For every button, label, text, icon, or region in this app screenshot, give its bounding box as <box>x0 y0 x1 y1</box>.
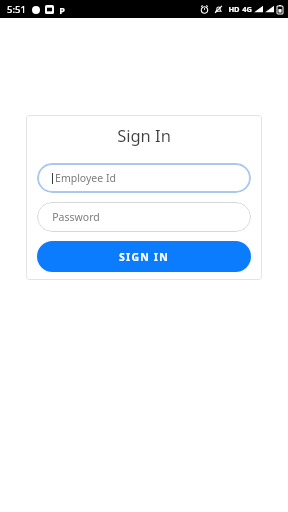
button[interactable]: Employee Id <box>37 163 251 193</box>
staticText: Password <box>52 210 100 224</box>
staticText: 5:51 <box>7 3 26 16</box>
staticText: HD <box>228 4 240 14</box>
staticText: 4G <box>242 4 252 14</box>
staticText: SIGN IN <box>119 250 169 264</box>
staticText: Sign In <box>117 124 171 146</box>
staticText: P <box>59 4 65 16</box>
staticText: Employee Id <box>55 171 116 185</box>
button[interactable]: Password <box>37 202 251 232</box>
button[interactable]: SIGN IN <box>37 241 251 272</box>
